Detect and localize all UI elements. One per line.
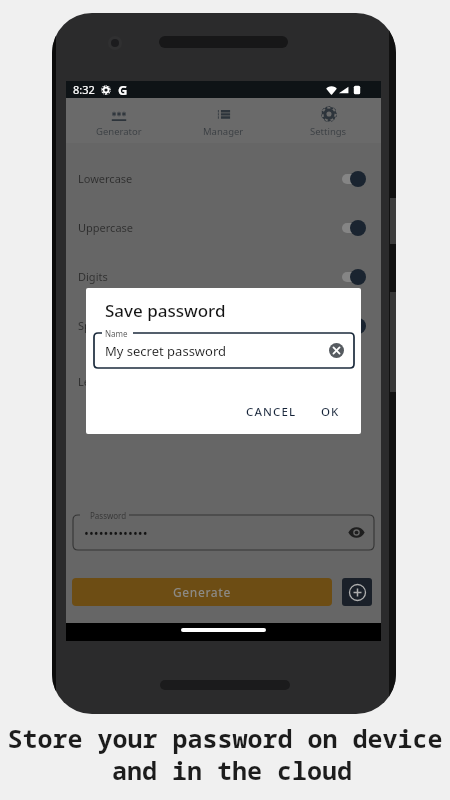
staticText: G [118, 81, 128, 98]
staticText: Save password [105, 299, 226, 322]
button[interactable]: CANCEL [238, 398, 305, 426]
button[interactable]: Settings [276, 98, 381, 143]
staticText: ••••••••••••• [84, 524, 148, 542]
staticText: Manager [203, 125, 244, 138]
button[interactable]: Manager [171, 98, 276, 143]
button[interactable]: Uppercase [66, 203, 381, 252]
button[interactable]: Digits [66, 252, 381, 301]
staticText: Length [78, 374, 115, 389]
button[interactable]: Show password [348, 524, 365, 541]
button[interactable]: Generator [66, 98, 171, 143]
staticText: My secret password [105, 342, 227, 360]
button[interactable]: Clear text [329, 343, 344, 358]
staticText: and in the cloud [7, 753, 450, 787]
staticText: Generator [96, 125, 142, 138]
button[interactable]: Special [66, 301, 381, 350]
staticText: Lowercase [78, 171, 133, 186]
staticText: 8:32 [73, 82, 95, 97]
staticText: Store your password on device [0, 721, 450, 755]
staticText: Name [105, 328, 128, 339]
staticText: Settings [310, 125, 347, 138]
button[interactable]: OK [313, 398, 348, 426]
button[interactable]: Lowercase [66, 154, 381, 203]
staticText: Password [90, 510, 127, 521]
staticText: Digits [78, 269, 108, 284]
button[interactable]: Generate [72, 578, 332, 606]
staticText: Special [78, 318, 115, 333]
staticText: Uppercase [78, 220, 134, 235]
button[interactable]: Length [66, 368, 381, 394]
staticText: OK [321, 404, 340, 420]
staticText: CANCEL [246, 404, 297, 420]
staticText: Generate [173, 584, 232, 600]
button[interactable]: Add password [342, 578, 372, 606]
